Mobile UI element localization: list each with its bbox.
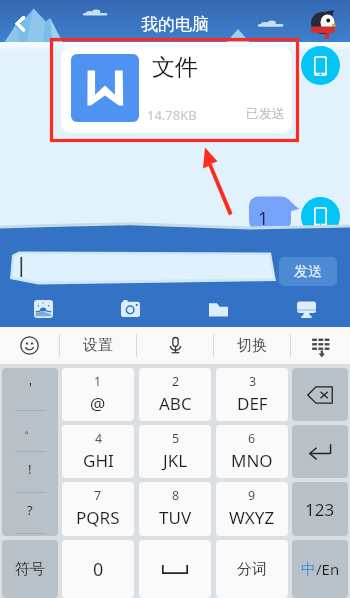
button[interactable]: 中	[292, 540, 348, 598]
button[interactable]: Candidates	[291, 327, 350, 364]
button[interactable]: '	[2, 368, 58, 536]
staticText: 8	[172, 487, 180, 504]
staticText: 设置	[83, 336, 113, 355]
staticText: 4	[95, 430, 103, 447]
staticText: 2	[172, 373, 180, 390]
staticText: 文件	[152, 53, 198, 82]
staticText: TUV	[159, 506, 192, 529]
staticText: 14.78KB	[147, 106, 197, 124]
staticText: WXYZ	[229, 506, 275, 529]
staticText: /En	[316, 559, 340, 579]
staticText: ABC	[159, 392, 192, 415]
button[interactable]	[292, 368, 348, 421]
staticText: GHI	[83, 449, 114, 472]
staticText: 1	[94, 373, 102, 390]
staticText: 切换	[237, 336, 267, 355]
staticText: @	[90, 392, 106, 415]
staticText: DEF	[237, 392, 268, 415]
staticText: MNO	[231, 449, 273, 472]
button[interactable]: My computer	[262, 298, 350, 320]
staticText: 发送	[294, 263, 322, 281]
button[interactable]	[139, 540, 211, 598]
button[interactable]: 1	[62, 368, 134, 421]
staticText: ?	[27, 501, 33, 519]
staticText: 已发送	[246, 105, 285, 121]
button[interactable]: 发送	[279, 257, 337, 286]
button[interactable]: 符号	[2, 540, 58, 598]
button[interactable]: 4	[62, 425, 134, 478]
button[interactable]: Phone device	[301, 197, 340, 236]
button[interactable]: 文件	[61, 47, 292, 133]
button[interactable]	[292, 425, 348, 478]
staticText: 我的电脑	[141, 14, 209, 35]
button[interactable]: 3	[216, 368, 288, 421]
button[interactable]: 7	[62, 482, 134, 536]
staticText: !	[28, 460, 32, 478]
staticText: 0	[93, 557, 104, 582]
button[interactable]: Back	[4, 4, 42, 42]
button[interactable]: Voice input	[137, 327, 213, 364]
staticText: 6	[248, 430, 256, 447]
button[interactable]: Camera	[87, 298, 174, 320]
staticText: 符号	[15, 560, 45, 579]
staticText: 1	[258, 206, 269, 231]
staticText: PQRS	[76, 506, 120, 529]
button[interactable]: 分词	[216, 540, 288, 598]
button[interactable]: 5	[139, 425, 211, 478]
staticText: 7	[94, 487, 102, 504]
button[interactable]: 6	[216, 425, 288, 478]
button[interactable]: Contact avatar	[303, 3, 343, 43]
button[interactable]: Phone device	[301, 46, 340, 85]
staticText: 9	[248, 487, 256, 504]
button[interactable]: Files	[174, 298, 262, 320]
button[interactable]: 8	[139, 482, 211, 536]
staticText: 分词	[237, 560, 267, 579]
staticText: 。	[24, 420, 37, 436]
button[interactable]: 123	[292, 482, 348, 536]
staticText: 5	[172, 430, 180, 447]
staticText: 123	[305, 498, 335, 521]
staticText: JKL	[163, 449, 188, 472]
staticText: 中	[301, 560, 316, 579]
button[interactable]: Photos	[0, 298, 87, 320]
button[interactable]: 9	[216, 482, 288, 536]
button[interactable]: 切换	[214, 327, 290, 364]
button[interactable]: 设置	[60, 327, 136, 364]
button[interactable]: 2	[139, 368, 211, 421]
button[interactable]: 0	[62, 540, 134, 598]
button[interactable]: Emoji	[0, 327, 59, 364]
staticText: '	[29, 378, 32, 396]
staticText: 3	[249, 373, 257, 390]
